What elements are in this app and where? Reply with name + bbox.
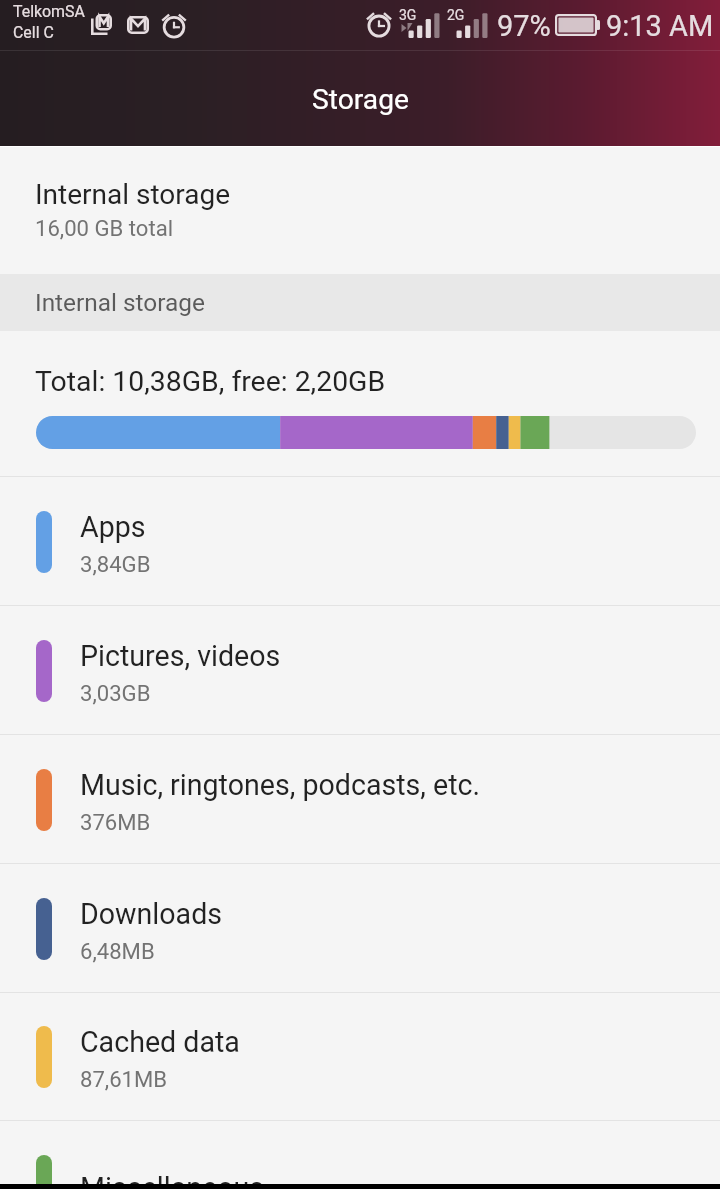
staticText: Total: 10,38GB, free: 2,20GB bbox=[35, 365, 386, 398]
button[interactable]: Internal storage bbox=[0, 147, 720, 274]
staticText: 3,84GB bbox=[80, 551, 151, 577]
staticText: Miscellaneous bbox=[80, 1171, 265, 1189]
staticText: Pictures, videos bbox=[80, 639, 281, 673]
staticText: 3G bbox=[399, 7, 417, 23]
button[interactable]: Total: 10,38GB, free: 2,20GB bbox=[0, 331, 720, 476]
other: Alarm bbox=[159, 10, 189, 40]
other: Alarm bbox=[364, 9, 394, 39]
staticText: Music, ringtones, podcasts, etc. bbox=[80, 768, 481, 802]
staticText: Cached data bbox=[80, 1025, 240, 1059]
staticText: TelkomSA bbox=[13, 2, 85, 21]
staticText: 97% bbox=[497, 9, 551, 43]
button[interactable]: Pictures, videos bbox=[0, 606, 720, 734]
staticText: 16,00 GB total bbox=[35, 215, 174, 241]
staticText: Storage bbox=[312, 83, 409, 116]
other: New mail bbox=[127, 16, 149, 34]
other: Unread mail bbox=[91, 14, 112, 35]
other: Battery 97 percent bbox=[555, 14, 600, 36]
staticText: Internal storage bbox=[35, 288, 205, 317]
staticText: Downloads bbox=[80, 897, 223, 931]
staticText: 2G bbox=[447, 7, 465, 23]
button[interactable]: Cached data bbox=[0, 993, 720, 1120]
staticText: 3,03GB bbox=[80, 680, 151, 706]
staticText: Apps bbox=[80, 510, 146, 544]
button[interactable]: Miscellaneous bbox=[0, 1121, 720, 1189]
button[interactable]: Downloads bbox=[0, 864, 720, 992]
button[interactable]: Apps bbox=[0, 477, 720, 605]
staticText: Cell C bbox=[13, 23, 54, 42]
staticText: 376MB bbox=[80, 809, 151, 835]
staticText: 87,61MB bbox=[80, 1066, 168, 1092]
staticText: Internal storage bbox=[35, 178, 231, 211]
button[interactable]: Music, ringtones, podcasts, etc. bbox=[0, 735, 720, 863]
staticText: 9:13 AM bbox=[606, 9, 714, 43]
staticText: 6,48MB bbox=[80, 938, 155, 964]
